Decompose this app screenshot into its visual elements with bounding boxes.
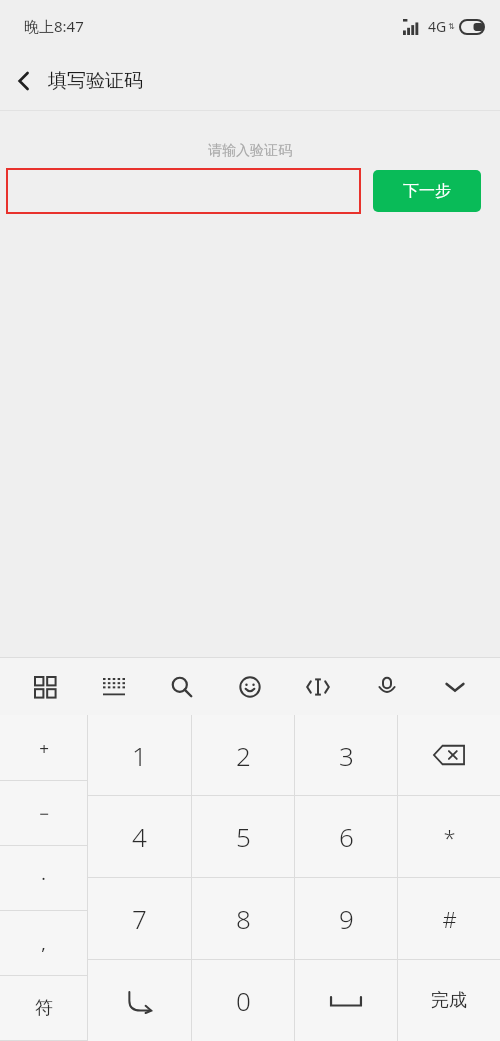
staticText: 1 bbox=[132, 738, 147, 773]
staticText: 4 bbox=[132, 819, 147, 854]
staticText: 晚上8:47 bbox=[24, 16, 84, 36]
staticText: 2 bbox=[236, 738, 251, 773]
staticText: 请输入验证码 bbox=[208, 142, 292, 160]
staticText: * bbox=[443, 822, 456, 852]
staticText: 4G bbox=[428, 17, 447, 36]
button[interactable]: 下一步 bbox=[373, 170, 481, 212]
button[interactable]: Emoji bbox=[227, 664, 273, 710]
button[interactable]: 4 bbox=[88, 796, 191, 877]
button[interactable]: , bbox=[0, 911, 87, 976]
button[interactable]: # bbox=[398, 878, 500, 959]
button[interactable]: 6 bbox=[295, 796, 397, 877]
staticText: + bbox=[39, 737, 49, 760]
button[interactable]: Back bbox=[0, 57, 48, 105]
staticText: 9 bbox=[339, 901, 354, 936]
button[interactable]: + bbox=[0, 715, 87, 781]
staticText: 5 bbox=[236, 819, 251, 854]
button[interactable]: Backspace bbox=[398, 715, 500, 795]
button[interactable]: Keyboard bbox=[91, 664, 137, 710]
button[interactable]: 1 bbox=[88, 715, 191, 795]
button[interactable]: Hide keyboard bbox=[432, 664, 478, 710]
staticText: 符 bbox=[35, 997, 53, 1020]
staticText: 完成 bbox=[431, 989, 467, 1012]
button[interactable]: 完成 bbox=[398, 960, 500, 1041]
staticText: 3 bbox=[339, 738, 354, 773]
button[interactable]: · bbox=[0, 846, 87, 911]
button[interactable]: 5 bbox=[192, 796, 294, 877]
button[interactable]: Return bbox=[88, 960, 191, 1041]
staticText: , bbox=[41, 932, 46, 955]
staticText: 填写验证码 bbox=[48, 69, 143, 93]
staticText: · bbox=[41, 867, 46, 890]
button[interactable]: 7 bbox=[88, 878, 191, 959]
staticText: ⇅ bbox=[448, 22, 455, 31]
button[interactable]: − bbox=[0, 781, 87, 846]
button[interactable]: 符 bbox=[0, 976, 87, 1041]
button[interactable]: Move cursor bbox=[295, 664, 341, 710]
button[interactable]: Search bbox=[159, 664, 205, 710]
button[interactable]: 8 bbox=[192, 878, 294, 959]
button[interactable] bbox=[6, 168, 361, 214]
button[interactable]: 9 bbox=[295, 878, 397, 959]
button[interactable]: Space bbox=[295, 960, 397, 1041]
button[interactable]: 0 bbox=[192, 960, 294, 1041]
staticText: 7 bbox=[132, 901, 147, 936]
button[interactable]: Voice input bbox=[364, 664, 410, 710]
staticText: 8 bbox=[236, 901, 251, 936]
button[interactable]: 2 bbox=[192, 715, 294, 795]
staticText: − bbox=[39, 802, 49, 825]
staticText: 下一步 bbox=[403, 181, 451, 201]
staticText: 0 bbox=[236, 983, 251, 1018]
button[interactable]: 3 bbox=[295, 715, 397, 795]
button[interactable]: Apps bbox=[22, 664, 68, 710]
staticText: # bbox=[442, 904, 457, 934]
button[interactable]: * bbox=[398, 796, 500, 877]
staticText: 6 bbox=[339, 819, 354, 854]
